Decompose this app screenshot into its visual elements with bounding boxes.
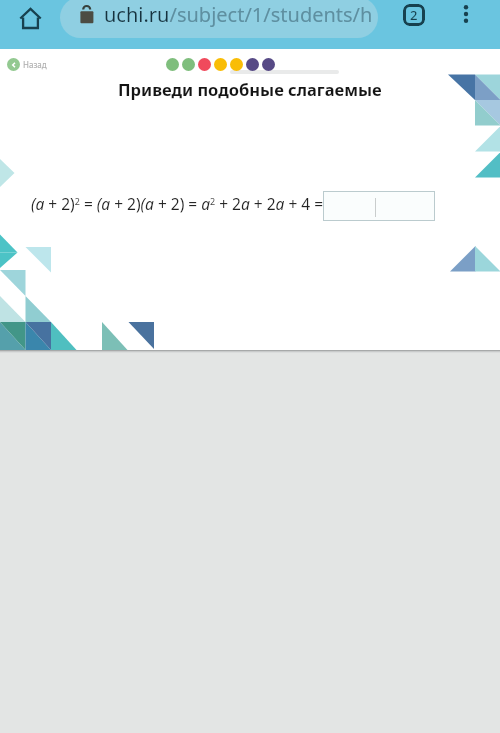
button[interactable] — [60, 0, 378, 38]
staticText: uchi.ru/subject/1/students/h — [104, 1, 373, 28]
staticText: (a + 2)2 = (a + 2)(a + 2) = a2 + 2a + 2a… — [31, 193, 324, 214]
button[interactable]: Tabs — [401, 2, 427, 28]
staticText: 2 — [410, 6, 418, 24]
staticText: Приведи подобные слагаемые — [118, 78, 382, 100]
button[interactable]: Назад — [7, 58, 47, 71]
button[interactable]: Home — [12, 0, 48, 36]
button[interactable]: More options — [453, 1, 479, 27]
button[interactable] — [323, 191, 435, 221]
staticText: Назад — [23, 59, 47, 70]
